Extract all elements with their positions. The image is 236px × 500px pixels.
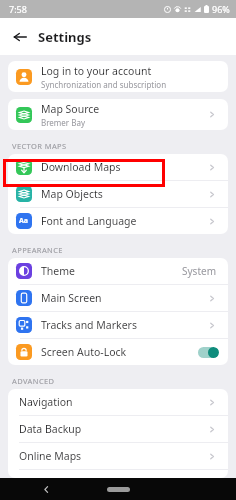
button[interactable]: Data Backup xyxy=(8,416,228,442)
button[interactable]: Theme xyxy=(8,258,228,284)
staticText: Bremer Bay xyxy=(41,117,85,128)
button[interactable]: Screen Auto-Lock xyxy=(8,339,228,365)
button[interactable]: Screen Auto-Lock toggle xyxy=(198,347,219,358)
staticText: VECTOR MAPS xyxy=(12,141,67,151)
button[interactable]: Back xyxy=(38,481,54,497)
staticText: Font and Language xyxy=(41,214,137,228)
staticText: Log in to your account xyxy=(41,64,152,78)
button[interactable]: Aa xyxy=(8,208,228,234)
staticText: Navigation xyxy=(19,395,73,409)
staticText: Tracks and Markers xyxy=(41,318,137,332)
staticText: System xyxy=(182,264,216,278)
staticText: Online Maps xyxy=(19,449,82,463)
staticText: 7:58 xyxy=(9,3,27,15)
button[interactable]: Tracks and Markers xyxy=(8,312,228,338)
staticText: APPEARANCE xyxy=(12,245,63,255)
staticText: Screen Auto-Lock xyxy=(41,345,127,359)
button[interactable]: Online Maps xyxy=(8,443,228,469)
staticText: Map Source xyxy=(41,102,100,116)
button[interactable]: Map Source xyxy=(8,99,228,130)
button[interactable]: Home xyxy=(107,487,130,492)
button[interactable]: Navigation xyxy=(8,389,228,415)
staticText: Main Screen xyxy=(41,291,102,305)
staticText: Synchronization and subscription xyxy=(41,79,167,90)
button[interactable]: Log in to your account xyxy=(8,61,228,92)
button[interactable]: Back xyxy=(7,24,33,50)
staticText: 96% xyxy=(212,3,230,15)
staticText: Settings xyxy=(38,28,92,46)
button[interactable]: Map Objects xyxy=(8,181,228,207)
staticText: Map Objects xyxy=(41,187,103,201)
staticText: Aa xyxy=(19,216,29,226)
staticText: Theme xyxy=(41,264,75,278)
button[interactable]: Main Screen xyxy=(8,285,228,311)
staticText: Download Maps xyxy=(41,160,121,174)
staticText: Data Backup xyxy=(19,422,82,436)
staticText: ADVANCED xyxy=(12,376,55,386)
button[interactable]: Download Maps xyxy=(8,154,228,180)
